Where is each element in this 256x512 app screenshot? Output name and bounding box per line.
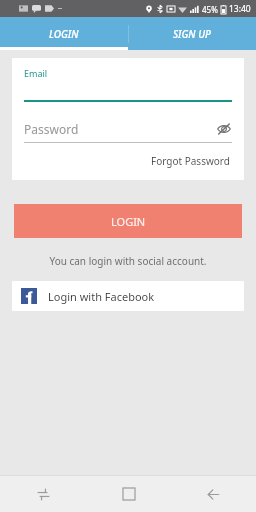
staticText: Login with Facebook <box>48 289 155 304</box>
staticText: Email <box>24 67 48 79</box>
button[interactable]: LOGIN <box>14 204 242 238</box>
staticText: SIGN UP <box>173 27 211 41</box>
button[interactable]: Forgot Password <box>149 152 232 170</box>
staticText: LOGIN <box>111 214 146 229</box>
button[interactable]: LOGIN <box>0 17 128 50</box>
button[interactable]: Back <box>171 476 256 512</box>
staticText: Password <box>24 121 216 137</box>
staticText: 45% <box>202 4 218 15</box>
button[interactable]: Show password <box>216 121 232 137</box>
button[interactable]: SIGN UP <box>128 17 256 50</box>
staticText: LOGIN <box>49 27 79 41</box>
button[interactable]: Login with Facebook <box>12 281 244 311</box>
staticText: 13:40 <box>229 3 251 15</box>
staticText: Forgot Password <box>151 154 230 168</box>
button[interactable]: Home <box>86 476 171 512</box>
button[interactable]: Recents <box>0 476 86 512</box>
staticText: You can login with social account. <box>0 254 256 268</box>
